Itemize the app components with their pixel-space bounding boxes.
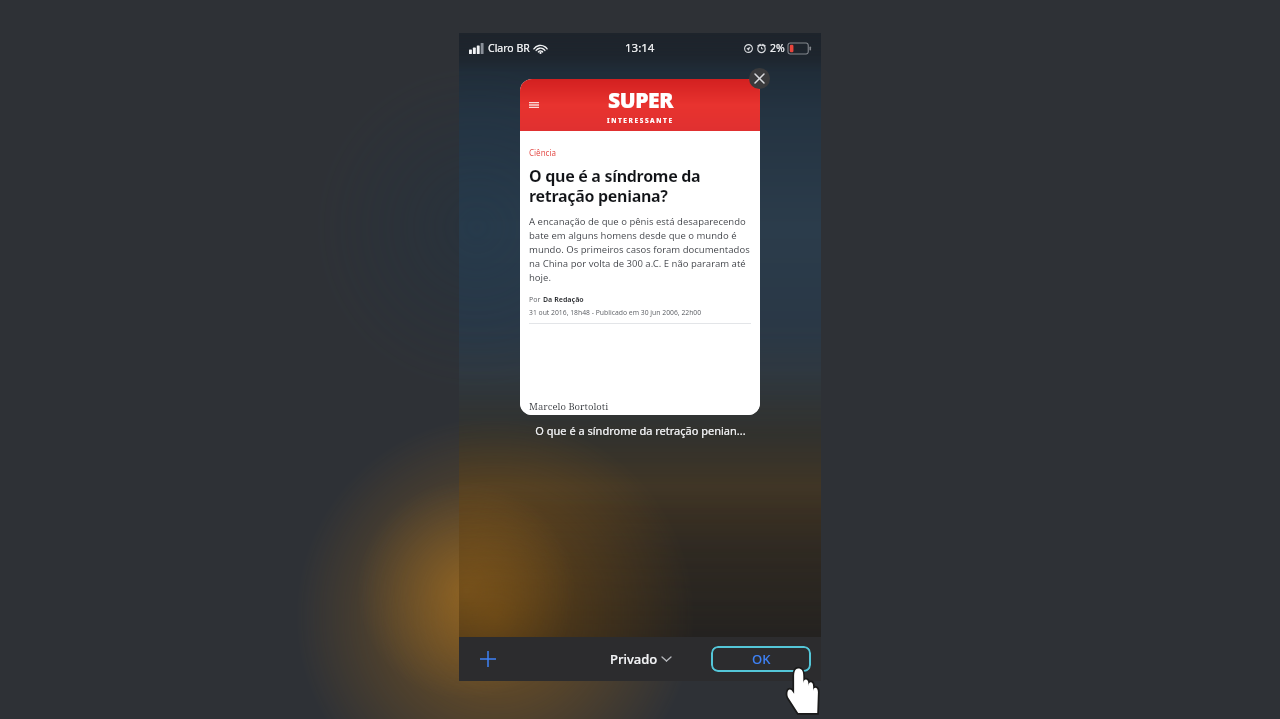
staticText: O que é a síndrome da retração penian...: [535, 423, 746, 438]
staticText: Por: [529, 295, 543, 305]
button[interactable]: New tab: [471, 642, 505, 676]
staticText: A encanação de que o pênis está desapare…: [529, 215, 751, 284]
staticText: Marcelo Bortoloti: [529, 400, 609, 413]
button[interactable]: OK: [711, 646, 811, 672]
staticText: OK: [752, 650, 771, 668]
staticText: Claro BR: [488, 41, 530, 55]
button[interactable]: Menu: [520, 79, 760, 415]
staticText: INTERESSANTE: [607, 116, 674, 125]
button[interactable]: Privado: [610, 650, 671, 668]
staticText: Privado: [610, 650, 658, 668]
staticText: 2%: [770, 41, 785, 55]
staticText: O que é a síndrome da retração peniana?: [529, 165, 701, 206]
staticText: Ciência: [529, 147, 556, 158]
staticText: 13:14: [625, 40, 655, 56]
button[interactable]: Menu: [529, 100, 539, 110]
button[interactable]: Close: [749, 68, 770, 89]
staticText: 31 out 2016, 18h48 - Publicado em 30 jun…: [529, 308, 702, 317]
staticText: SUPER: [608, 86, 674, 115]
staticText: Da Redação: [543, 295, 584, 305]
